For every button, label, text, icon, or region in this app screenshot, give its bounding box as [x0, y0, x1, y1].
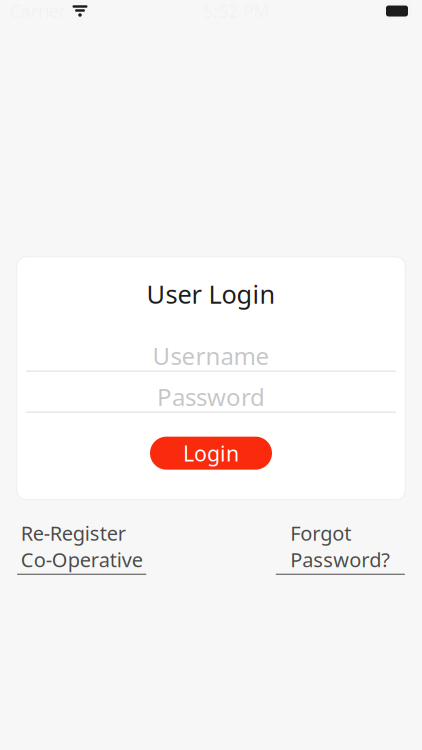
staticText: Username — [152, 340, 269, 372]
button[interactable]: Password — [26, 382, 396, 413]
button[interactable]: Forgot Password? — [276, 520, 405, 575]
staticText: User Login — [146, 277, 275, 311]
staticText: Password — [157, 381, 265, 413]
button[interactable]: Username — [26, 341, 396, 372]
button[interactable]: Re-Register Co-Operative — [17, 520, 146, 575]
button[interactable]: Login — [150, 437, 272, 470]
staticText: Forgot Password? — [290, 520, 390, 573]
staticText: Re-Register Co-Operative — [21, 520, 143, 573]
staticText: Login — [183, 439, 239, 467]
